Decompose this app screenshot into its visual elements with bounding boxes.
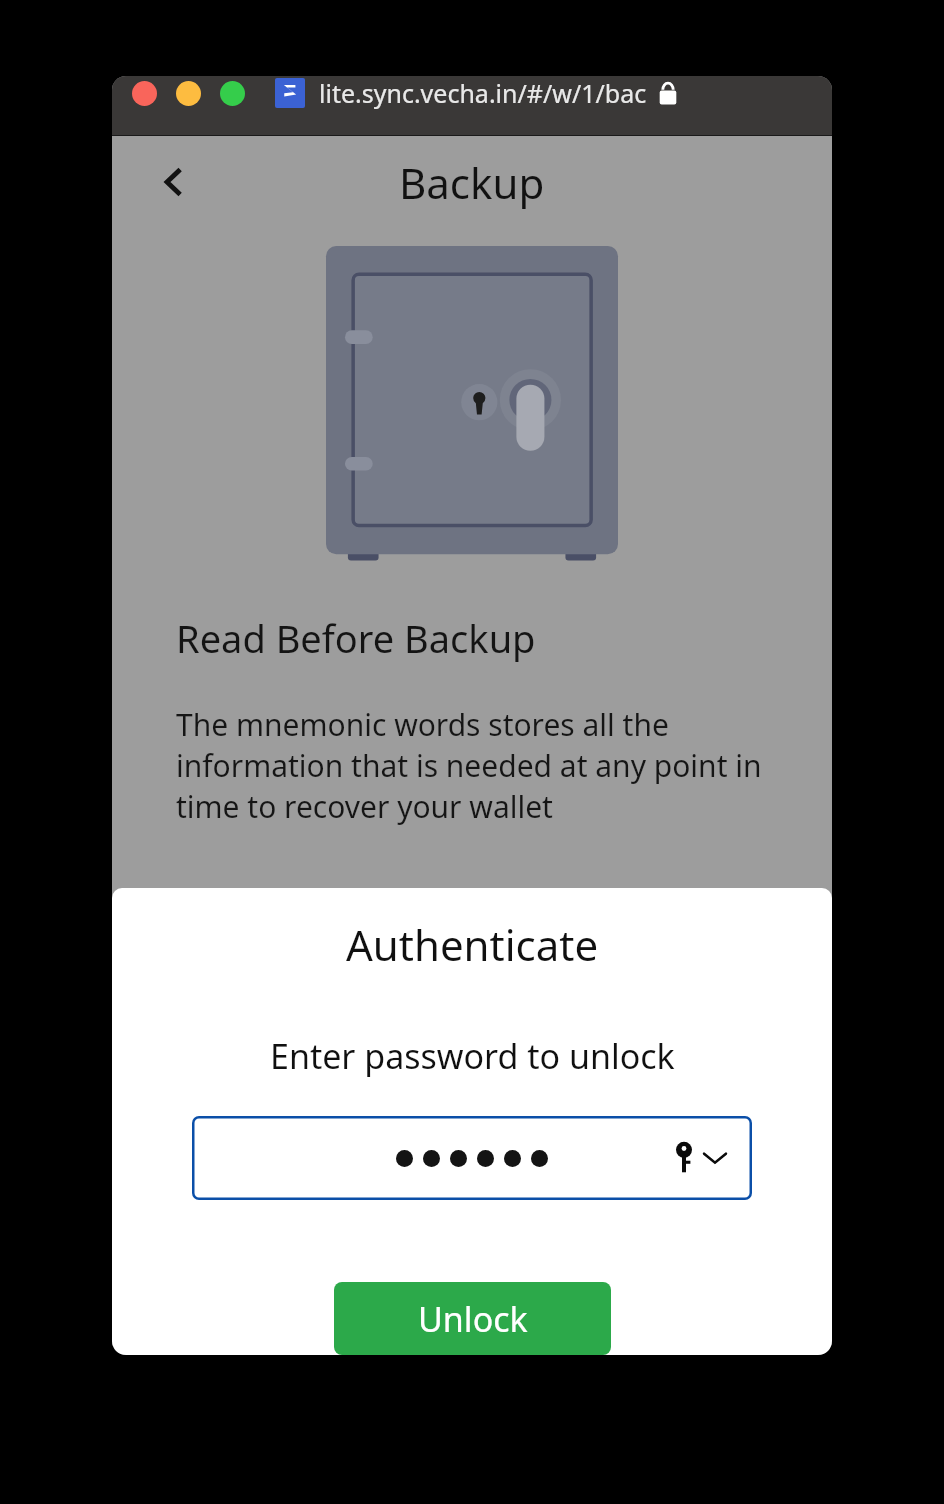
button[interactable]: Maximize bbox=[220, 81, 245, 106]
button[interactable]: Back bbox=[142, 151, 204, 213]
button[interactable]: Unlock bbox=[334, 1282, 611, 1355]
staticText: The mnemonic words stores all the inform… bbox=[176, 704, 762, 827]
button[interactable]: Show saved passwords bbox=[192, 1116, 752, 1200]
button[interactable]: Show saved passwords bbox=[674, 1141, 728, 1175]
staticText: Unlock bbox=[418, 1296, 528, 1342]
staticText: Backup bbox=[399, 154, 545, 211]
staticText: Authenticate bbox=[346, 916, 599, 973]
staticText: Read Before Backup bbox=[176, 612, 536, 664]
staticText: Enter password to unlock bbox=[270, 1033, 675, 1079]
button[interactable]: Minimize bbox=[176, 81, 201, 106]
staticText: lite.sync.vecha.in/#/w/1/bac bbox=[319, 76, 647, 110]
button[interactable]: Close bbox=[132, 81, 157, 106]
